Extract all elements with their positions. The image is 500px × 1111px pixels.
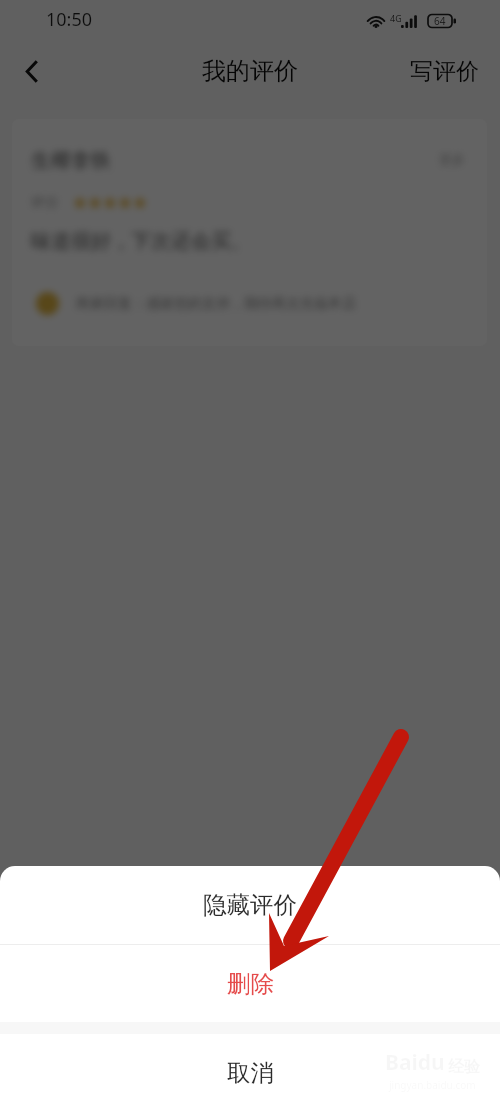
button[interactable]: 隐藏评价 bbox=[0, 866, 500, 944]
staticText: 写评价 bbox=[410, 57, 479, 86]
button[interactable]: 删除 bbox=[0, 945, 500, 1022]
staticText: 取消 bbox=[227, 1058, 274, 1088]
staticText: Baidu bbox=[385, 1048, 445, 1077]
button[interactable]: 返回 bbox=[6, 45, 58, 97]
staticText: 商家回复：感谢您的支持，期待再次光临本店 bbox=[76, 295, 356, 313]
button[interactable]: 写评价 bbox=[389, 47, 500, 96]
staticText: 隐藏评价 bbox=[203, 890, 297, 920]
staticText: 64 bbox=[434, 14, 446, 28]
staticText: 经验 bbox=[448, 1057, 480, 1077]
staticText: 我的评价 bbox=[202, 56, 298, 86]
staticText: 味道很好，下次还会买。 bbox=[31, 229, 251, 254]
staticText: 4G bbox=[390, 12, 401, 24]
staticText: 删除 bbox=[227, 969, 274, 999]
staticText: 10:50 bbox=[46, 7, 93, 32]
button[interactable]: 取消 bbox=[0, 1034, 500, 1111]
staticText: 生椰拿铁 bbox=[31, 148, 111, 173]
button[interactable]: 生椰拿铁 bbox=[12, 119, 487, 346]
